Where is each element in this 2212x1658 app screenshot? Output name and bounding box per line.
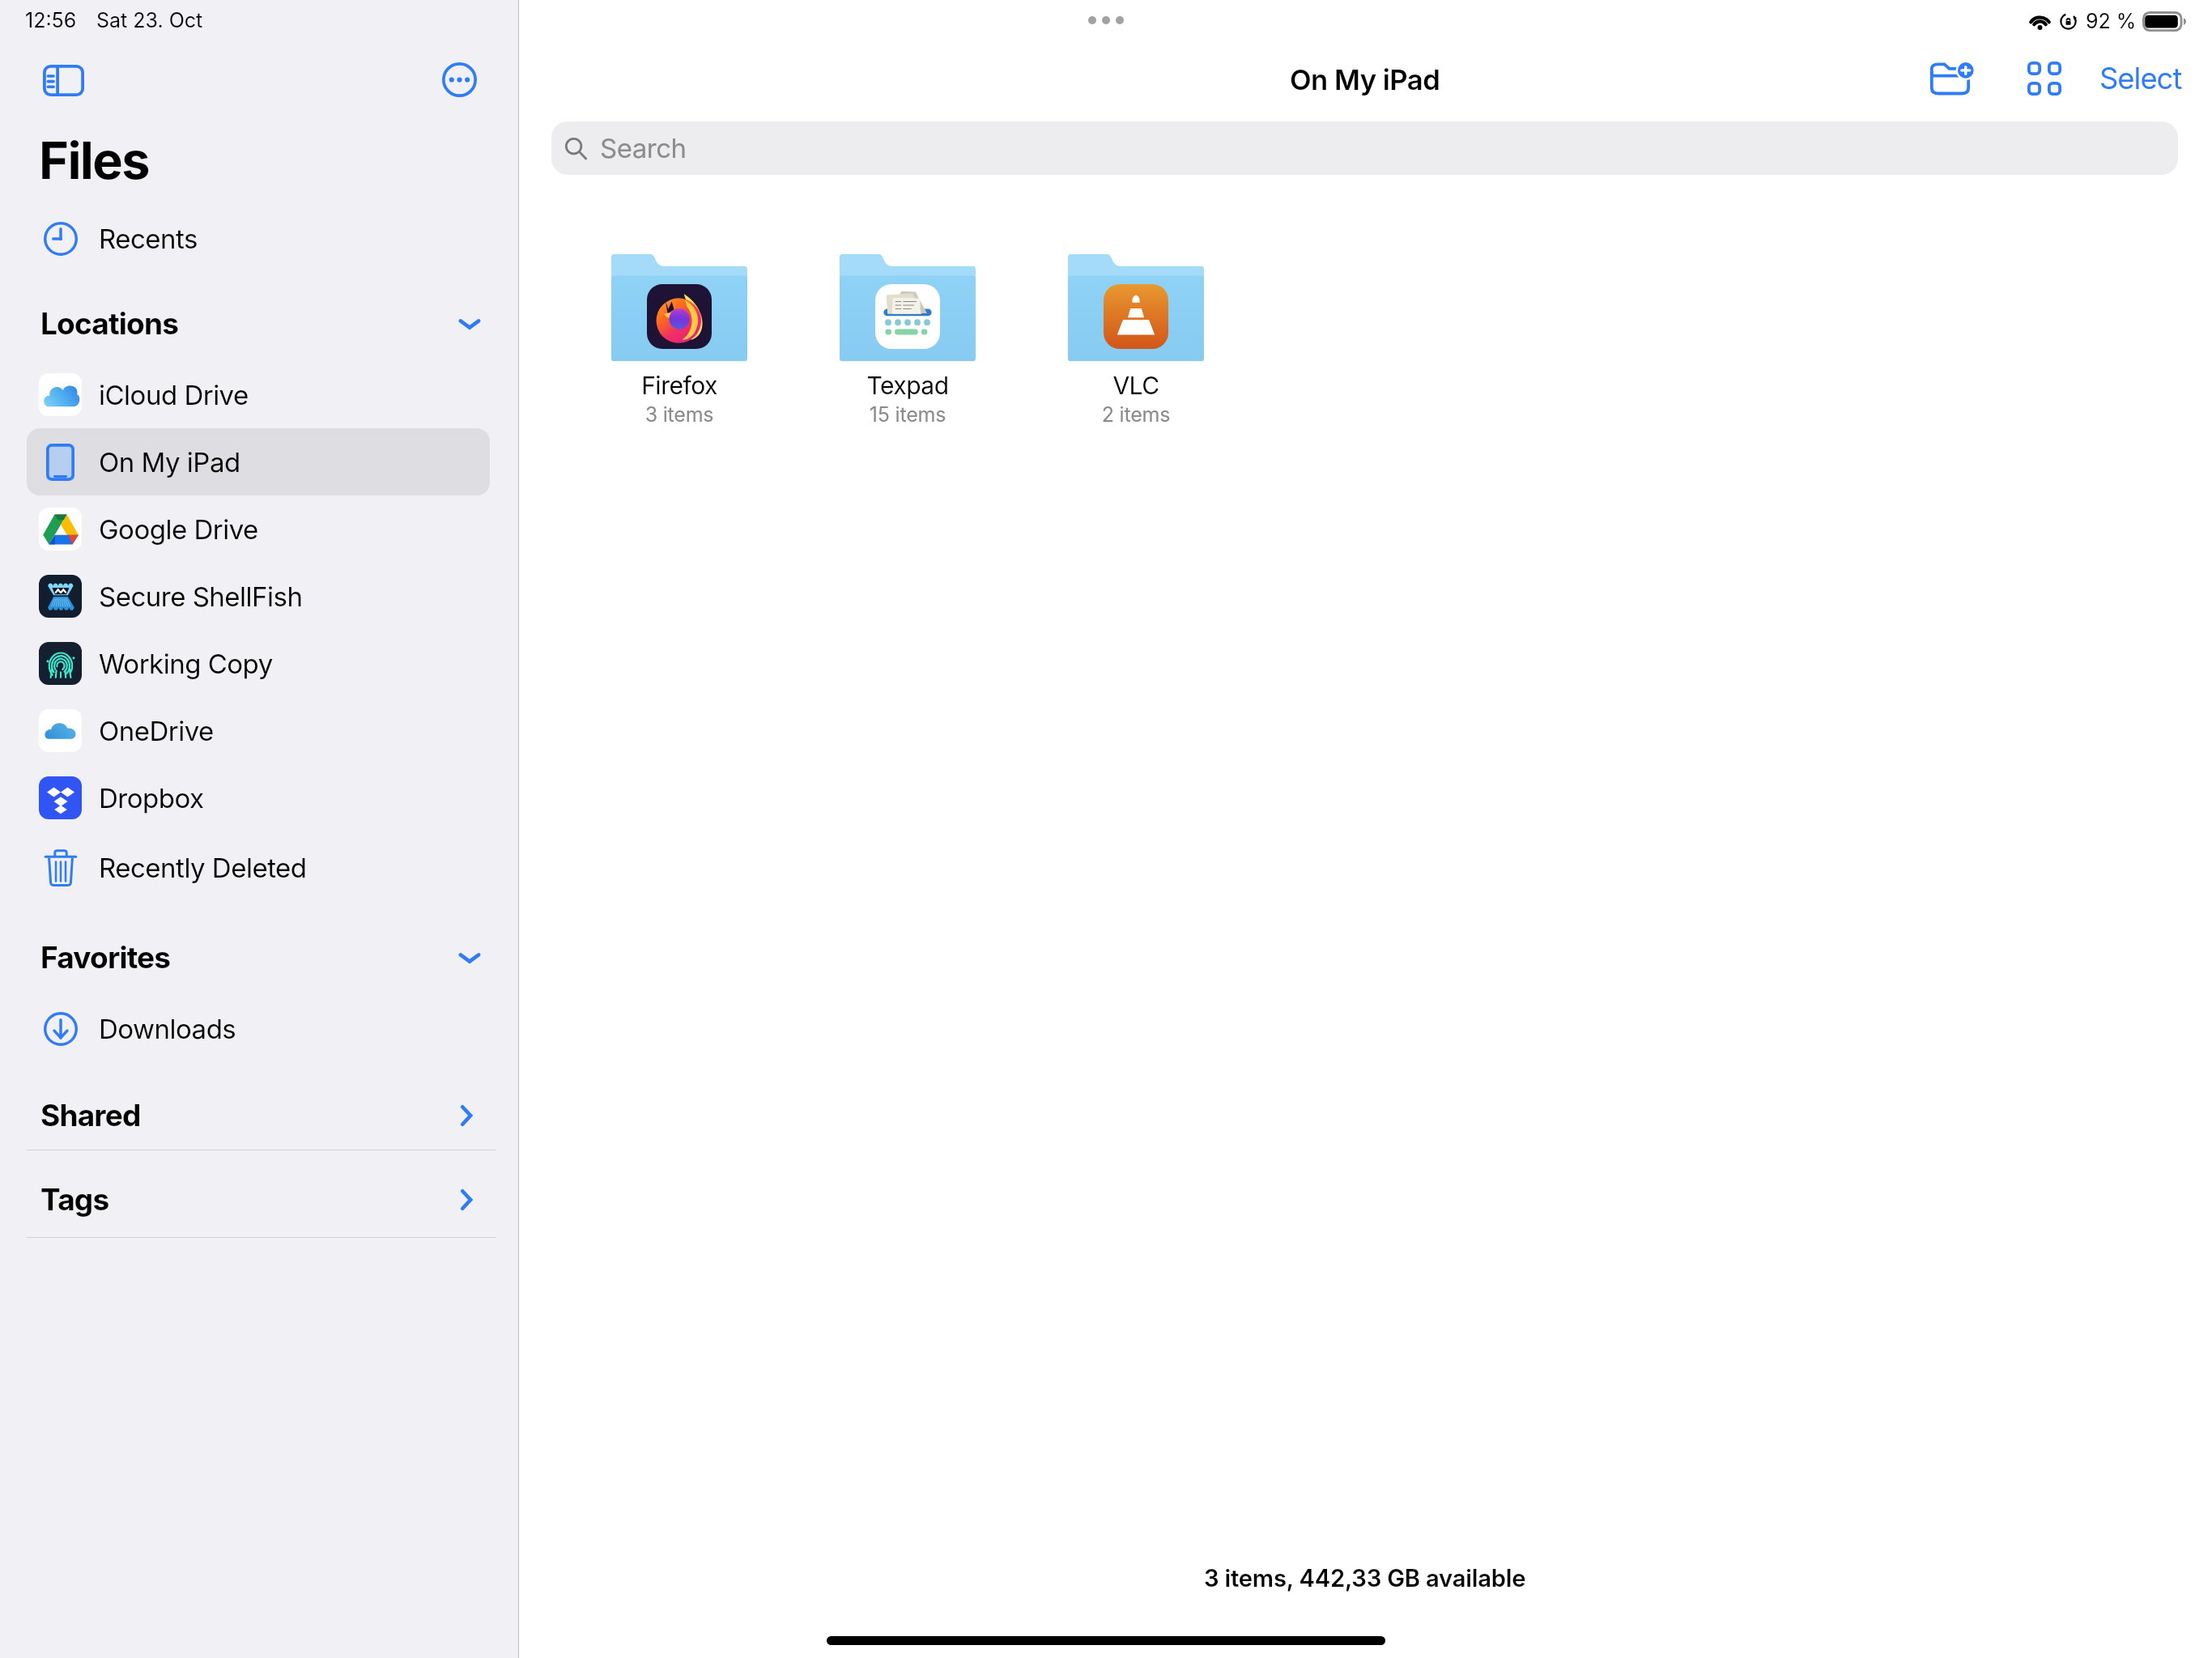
staticText: OneDrive — [99, 715, 214, 747]
staticText: Google Drive — [99, 513, 258, 546]
staticText: 92 % — [2086, 9, 2137, 33]
staticText: Secure ShellFish — [99, 580, 303, 613]
button[interactable]: On My iPad — [27, 428, 490, 495]
staticText: Files — [39, 130, 149, 191]
staticText: 3 items, 442,33 GB available — [1204, 1564, 1526, 1592]
staticText: 3 items — [565, 402, 793, 427]
staticText: iCloud Drive — [99, 379, 249, 411]
staticText: 15 items — [793, 402, 1022, 427]
button[interactable]: Recents — [27, 205, 490, 272]
staticText: Sat 23. Oct — [96, 8, 203, 32]
button[interactable]: VLC — [1022, 254, 1250, 427]
staticText: Tags — [40, 1181, 109, 1218]
staticText: Firefox — [565, 371, 793, 400]
staticText: On My iPad — [99, 446, 240, 478]
button[interactable]: Texpad — [793, 254, 1022, 427]
staticText: Recents — [99, 223, 198, 255]
staticText: Downloads — [99, 1013, 236, 1045]
staticText: Shared — [40, 1097, 141, 1133]
button[interactable]: Search — [551, 121, 2178, 175]
button[interactable]: Locations — [0, 290, 518, 357]
button[interactable]: Toggle sidebar — [34, 51, 92, 109]
button[interactable]: Select — [2090, 48, 2192, 109]
button[interactable]: New folder — [1920, 46, 1984, 111]
staticText: Working Copy — [99, 648, 273, 680]
staticText: On My iPad — [1290, 62, 1440, 96]
staticText: Select — [2099, 61, 2182, 96]
staticText: Texpad — [793, 371, 1022, 400]
button[interactable]: Downloads — [27, 995, 490, 1062]
button[interactable]: Secure ShellFish — [27, 563, 490, 630]
staticText: VLC — [1022, 371, 1250, 400]
button[interactable]: Dropbox — [27, 764, 490, 831]
staticText: Recently Deleted — [99, 852, 307, 884]
button[interactable]: Firefox — [565, 254, 793, 427]
staticText: Locations — [40, 305, 179, 342]
button[interactable]: Recently Deleted — [27, 834, 490, 901]
button[interactable]: Google Drive — [27, 495, 490, 563]
button[interactable]: OneDrive — [27, 697, 490, 764]
staticText: Favorites — [40, 939, 171, 976]
staticText: 12:56 — [25, 8, 77, 32]
staticText: 2 items — [1022, 402, 1250, 427]
button[interactable]: Shared — [0, 1082, 518, 1149]
button[interactable]: Working Copy — [27, 630, 490, 697]
staticText: Search — [600, 132, 687, 164]
staticText: Dropbox — [99, 782, 204, 814]
button[interactable]: More options — [430, 50, 488, 108]
button[interactable]: Favorites — [0, 924, 518, 991]
button[interactable]: Change view — [2012, 46, 2077, 111]
button[interactable]: Tags — [0, 1166, 518, 1233]
button[interactable]: iCloud Drive — [27, 361, 490, 428]
